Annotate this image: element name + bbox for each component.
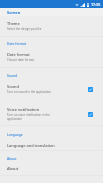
staticText: Turn on voice notification in the applic… <box>7 113 61 121</box>
button[interactable]: Language and translation <box>0 143 103 150</box>
staticText: 17:35 <box>91 2 101 7</box>
staticText: Sound <box>7 73 18 77</box>
staticText: About <box>7 166 19 171</box>
staticText: Turn on sound in the application <box>7 90 52 94</box>
staticText: Language and translation <box>7 143 55 148</box>
button[interactable]: About <box>0 166 103 175</box>
staticText: Voice notification <box>7 107 40 112</box>
staticText: Theme <box>7 21 20 26</box>
button[interactable]: Sound <box>0 84 103 98</box>
staticText: Sound <box>7 84 19 89</box>
button[interactable]: Date format <box>0 52 103 67</box>
staticText: About <box>7 156 17 160</box>
staticText: Choose date format <box>7 58 35 62</box>
staticText: Language <box>7 132 23 136</box>
button[interactable]: Theme <box>0 16 103 36</box>
button[interactable]: Voice notification <box>0 98 103 125</box>
staticText: Date format <box>7 52 30 57</box>
staticText: Date format <box>7 41 27 45</box>
staticText: Select the design you like <box>7 27 42 31</box>
staticText: Screen <box>7 10 21 15</box>
